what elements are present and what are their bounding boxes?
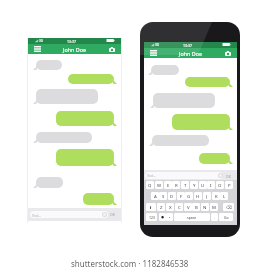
button[interactable]: Camera	[223, 49, 232, 57]
button[interactable]: I	[207, 181, 215, 189]
button[interactable]: Emoji	[218, 173, 223, 178]
staticText: Z	[160, 204, 163, 210]
button[interactable]: space	[174, 213, 210, 221]
staticText: K	[215, 193, 218, 199]
button[interactable]: T	[181, 181, 189, 189]
staticText: 3G	[155, 43, 160, 47]
staticText: H	[196, 193, 200, 199]
staticText: B	[195, 204, 198, 210]
button[interactable]	[33, 177, 63, 188]
staticText: J	[206, 193, 208, 199]
staticText: G	[187, 193, 191, 199]
staticText: C	[178, 204, 181, 210]
button[interactable]: A	[151, 192, 159, 200]
staticText: U	[201, 182, 205, 188]
staticText: shutterstock.com · 1182846538	[71, 258, 189, 269]
button[interactable]	[172, 114, 233, 130]
staticText: S	[162, 193, 165, 199]
staticText: E	[167, 182, 170, 188]
staticText: W	[157, 182, 162, 188]
staticText: ⬆	[149, 205, 153, 209]
staticText: •	[169, 215, 171, 220]
button[interactable]: K	[212, 192, 220, 200]
button[interactable]: Go	[219, 213, 233, 221]
button[interactable]: E	[164, 181, 172, 189]
button[interactable]: N	[201, 203, 209, 211]
button[interactable]	[83, 193, 117, 205]
button[interactable]: Open navigation menu	[149, 49, 158, 57]
staticText: N	[203, 204, 207, 210]
staticText: John Doe	[63, 46, 87, 53]
staticText: Q	[148, 182, 152, 188]
button[interactable]	[199, 153, 233, 164]
staticText: space	[187, 215, 197, 220]
button[interactable]: .	[211, 213, 218, 221]
button[interactable]: U	[199, 181, 207, 189]
staticText: Text...	[32, 213, 41, 217]
staticText: F	[180, 193, 183, 199]
button[interactable]: M	[210, 203, 218, 211]
staticText: T	[184, 182, 187, 188]
button[interactable]: J	[203, 192, 211, 200]
button[interactable]: R	[172, 181, 180, 189]
button[interactable]: G	[185, 192, 193, 200]
button[interactable]: L	[220, 192, 228, 200]
button[interactable]	[148, 65, 179, 75]
button[interactable]	[185, 77, 233, 87]
staticText: John Doe	[179, 50, 203, 57]
button[interactable]: F	[177, 192, 185, 200]
button[interactable]: H	[194, 192, 202, 200]
button[interactable]: Camera	[107, 45, 116, 53]
button[interactable]: Y	[190, 181, 198, 189]
button[interactable]: Change language	[159, 213, 166, 221]
button[interactable]: W	[155, 181, 163, 189]
button[interactable]	[33, 89, 98, 104]
button[interactable]: D	[168, 192, 176, 200]
button[interactable]: V	[184, 203, 192, 211]
button[interactable]: Q	[146, 181, 154, 189]
button[interactable]: Voice input	[166, 213, 173, 221]
staticText: R	[175, 182, 178, 188]
button[interactable]: S	[159, 192, 167, 200]
button[interactable]	[33, 60, 62, 70]
button[interactable]: Text...	[30, 211, 108, 218]
staticText: Go	[224, 215, 229, 220]
button[interactable]	[149, 135, 209, 146]
button[interactable]	[56, 111, 117, 126]
button[interactable]: Shift	[146, 203, 156, 211]
staticText: 123	[149, 215, 155, 220]
staticText: Text...	[147, 174, 156, 178]
button[interactable]	[56, 149, 117, 166]
button[interactable]: Emoji	[102, 212, 107, 217]
staticText: 13:37	[183, 43, 192, 48]
staticText: D	[170, 193, 174, 199]
button[interactable]	[68, 74, 117, 84]
staticText: X	[169, 204, 172, 210]
button[interactable]: Open navigation menu	[33, 45, 42, 53]
button[interactable]: Z	[157, 203, 165, 211]
staticText: .	[214, 215, 215, 220]
staticText: 13:37	[67, 39, 76, 44]
staticText: M	[212, 204, 216, 210]
button[interactable]: C	[175, 203, 183, 211]
staticText: Y	[193, 182, 196, 188]
staticText: ⌫	[226, 205, 232, 210]
staticText: L	[223, 193, 226, 199]
button[interactable]: Text...	[145, 172, 223, 179]
button[interactable]: O	[216, 181, 224, 189]
button[interactable]: Backspace	[223, 203, 234, 211]
staticText: O	[218, 182, 222, 188]
button[interactable]: P	[225, 181, 233, 189]
staticText: ●	[161, 215, 165, 219]
staticText: OK	[226, 174, 231, 179]
button[interactable]	[33, 132, 92, 143]
staticText: 3G	[39, 39, 44, 43]
button[interactable]: 123	[146, 213, 157, 221]
staticText: I	[210, 182, 212, 188]
button[interactable]: B	[192, 203, 200, 211]
button[interactable]	[150, 93, 215, 108]
staticText: V	[187, 204, 190, 210]
staticText: OK	[110, 212, 115, 217]
staticText: A	[154, 193, 157, 199]
button[interactable]: X	[166, 203, 174, 211]
